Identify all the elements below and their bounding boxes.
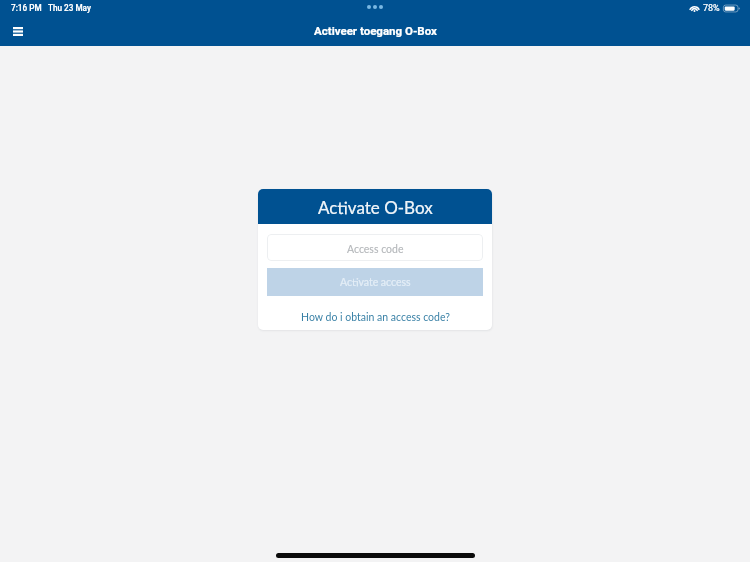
- button[interactable]: Access code: [267, 234, 483, 261]
- button[interactable]: Open navigation menu: [7, 20, 29, 42]
- staticText: 78%: [703, 3, 720, 14]
- staticText: Access code: [347, 243, 404, 256]
- button[interactable]: How do i obtain an access code?: [267, 311, 483, 324]
- staticText: How do i obtain an access code?: [301, 311, 450, 324]
- button[interactable]: Activate access: [267, 268, 483, 296]
- staticText: 7:16 PM: [11, 3, 42, 13]
- staticText: Activate O-Box: [318, 197, 433, 217]
- staticText: Activate access: [340, 276, 411, 289]
- staticText: Activeer toegang O-Box: [314, 24, 437, 37]
- staticText: Thu 23 May: [48, 3, 91, 13]
